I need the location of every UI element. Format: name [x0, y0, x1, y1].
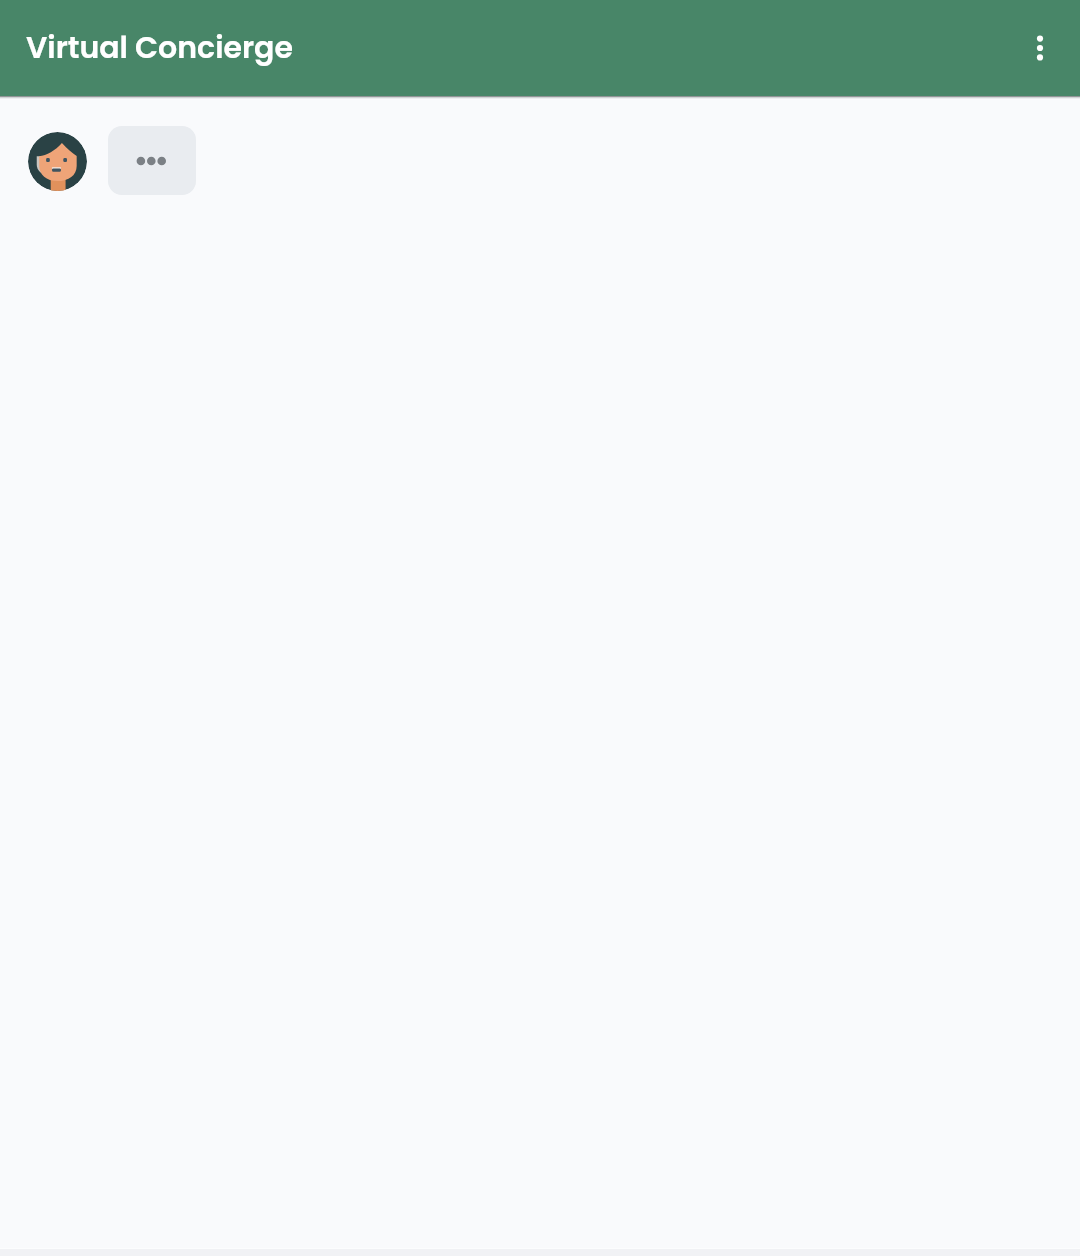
button[interactable]: More options: [1015, 23, 1065, 73]
button[interactable]: Concierge profile: [28, 132, 87, 191]
staticText: Virtual Concierge: [26, 27, 293, 69]
button[interactable]: Assistant is typing: [108, 126, 196, 195]
